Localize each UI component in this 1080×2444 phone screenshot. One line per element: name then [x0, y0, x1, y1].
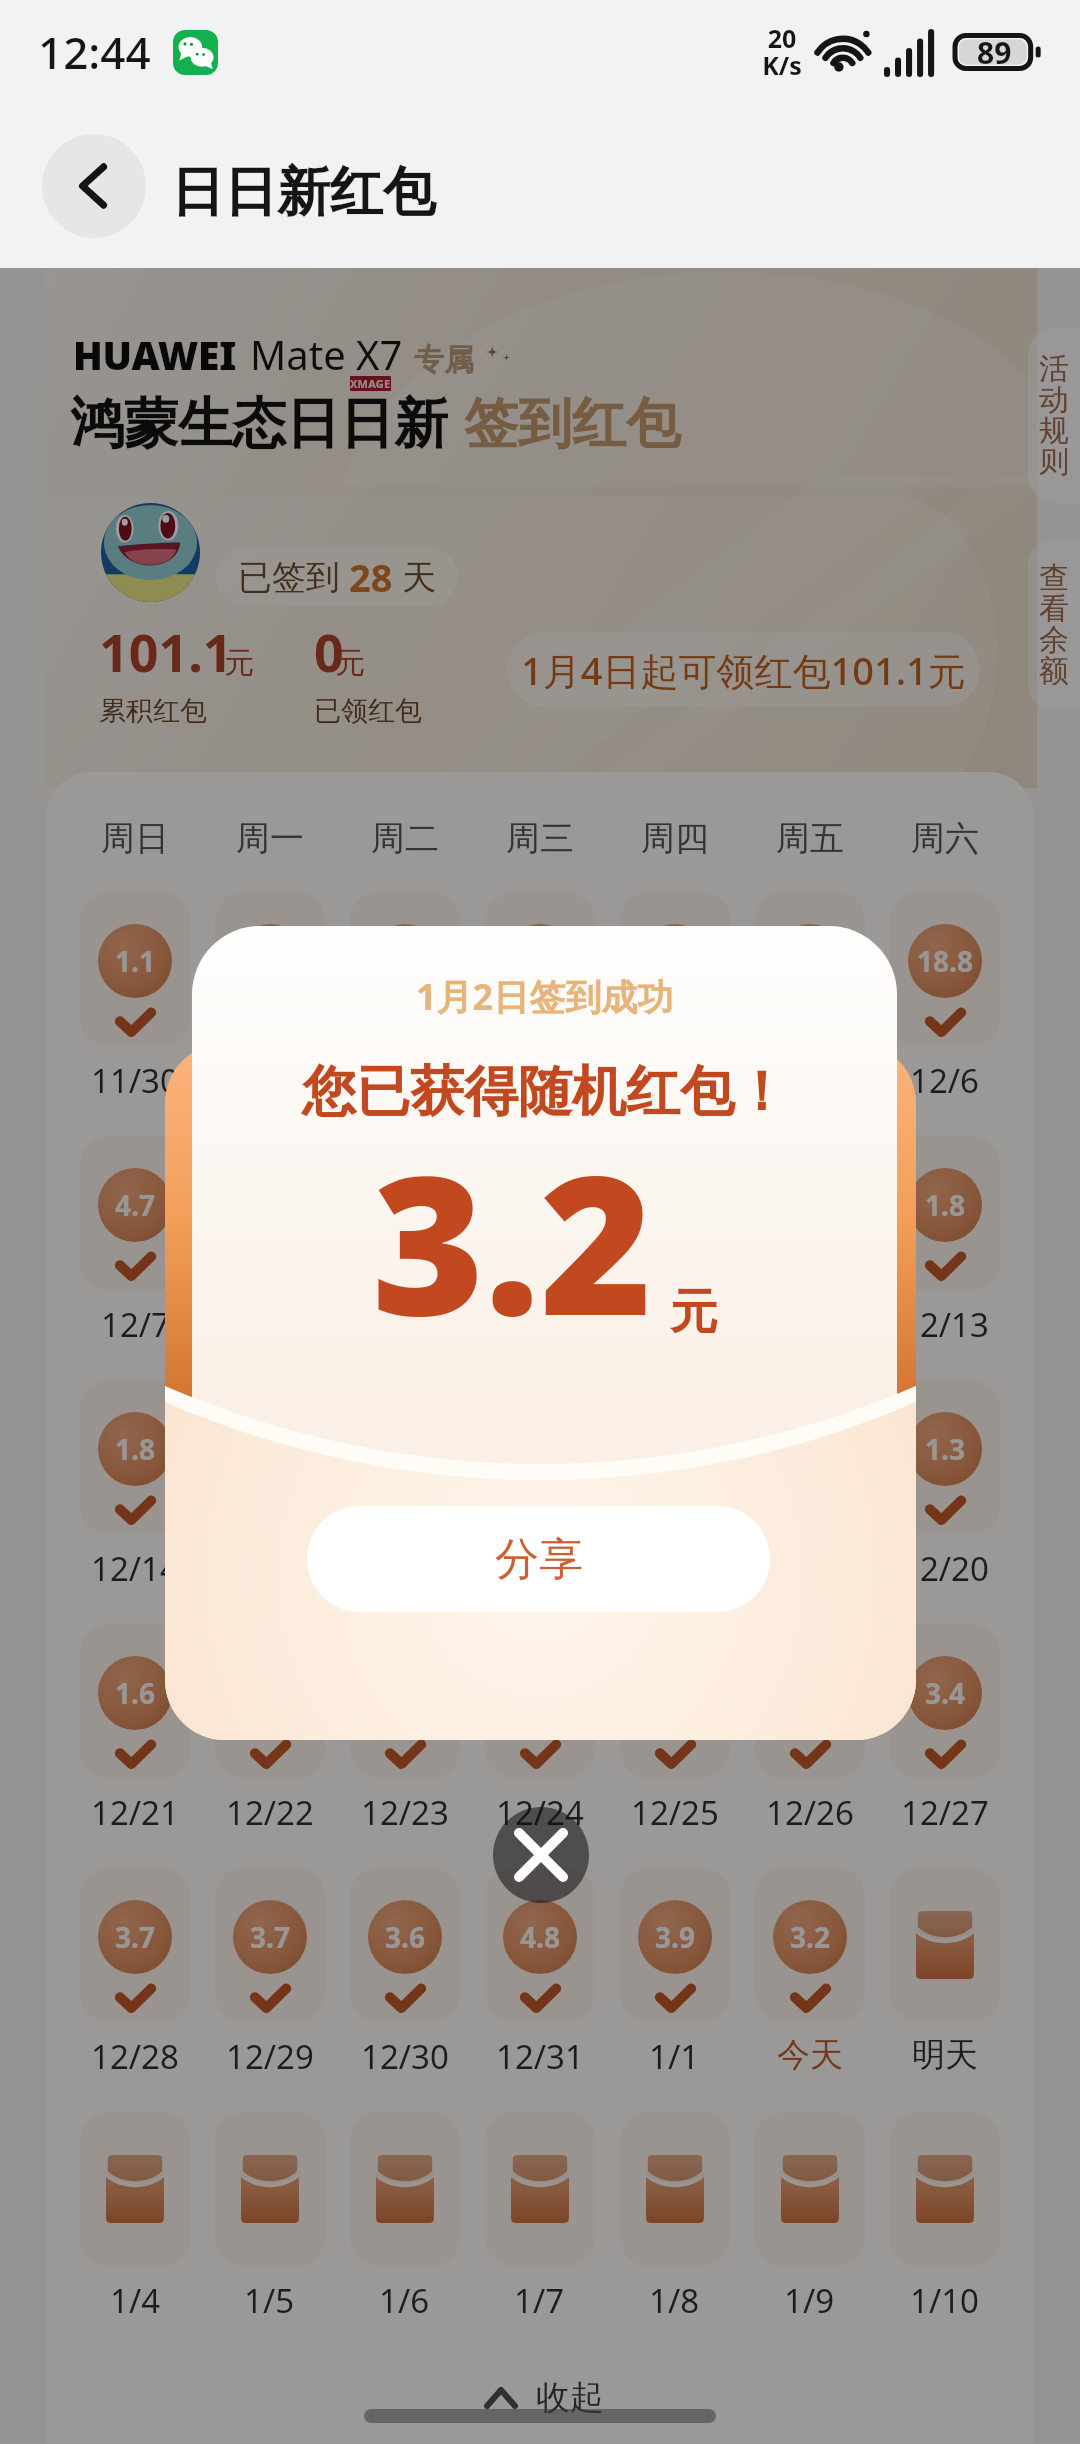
staticText: 今天 — [777, 2034, 843, 2076]
staticText: 您已获得随机红包！ — [302, 1058, 788, 1126]
staticText: 元 — [670, 1282, 718, 1342]
staticText: 12/4 — [640, 1058, 709, 1103]
staticText: 周四 — [641, 817, 709, 860]
button[interactable]: 4.7 — [68, 1136, 202, 1347]
staticText: XMAGE — [350, 376, 391, 391]
staticText: 周五 — [776, 817, 844, 860]
staticText: 101.1 — [99, 616, 233, 687]
button[interactable]: 3.2 — [742, 1868, 877, 2076]
staticText: 累积红包 — [99, 694, 207, 728]
staticText: 1月4日起可领红包101.1元 — [521, 644, 966, 696]
staticText: 12/19 — [766, 1546, 854, 1591]
button[interactable]: 1.8 — [877, 1136, 1012, 1347]
staticText: 1月2日签到成功 — [416, 972, 674, 1021]
button[interactable]: 4.8 — [472, 1868, 607, 2079]
button[interactable]: 1/10 — [877, 2112, 1012, 2323]
button[interactable]: 3.7 — [202, 1868, 337, 2079]
button[interactable]: 1.3 — [742, 1624, 877, 1835]
staticText: 1.4 — [385, 1186, 425, 1224]
button[interactable]: 活动规则 — [1028, 328, 1080, 503]
button[interactable]: 1/6 — [337, 2112, 472, 2323]
button[interactable]: 1.5 — [607, 1624, 742, 1835]
staticText: 12/30 — [361, 2034, 449, 2079]
button[interactable]: 1.9 — [337, 1624, 472, 1835]
staticText: 1/1 — [649, 2034, 700, 2079]
button[interactable]: 2.3 — [472, 1136, 607, 1347]
button[interactable]: 1.7 — [742, 1380, 877, 1591]
staticText: 活动规则 — [1038, 350, 1070, 481]
staticText: 89 — [977, 32, 1012, 73]
button[interactable]: 1.5 — [337, 1380, 472, 1591]
button[interactable]: Back — [42, 134, 146, 238]
staticText: 1/7 — [514, 2278, 565, 2323]
staticText: 0 — [314, 616, 344, 687]
button[interactable]: 收起 — [51, 2376, 1034, 2419]
button[interactable]: 3.0 — [607, 892, 742, 1103]
button[interactable]: 1月4日起可领红包101.1元 — [507, 632, 980, 707]
staticText: 1.1 — [115, 942, 155, 980]
staticText: 12/3 — [505, 1058, 574, 1103]
button[interactable]: 3.7 — [68, 1868, 202, 2079]
button[interactable]: 明天 — [877, 1868, 1012, 2076]
button[interactable]: Close — [493, 1807, 589, 1903]
button[interactable]: 查看余额 — [1028, 539, 1080, 710]
staticText: 12/21 — [91, 1790, 179, 1835]
button[interactable]: 3.4 — [877, 1624, 1012, 1835]
button[interactable]: 1.8 — [68, 1380, 202, 1591]
staticText: 周二 — [371, 817, 439, 860]
button[interactable]: 1.4 — [202, 1624, 337, 1835]
button[interactable]: 2.1 — [337, 892, 472, 1103]
staticText: 周三 — [506, 817, 574, 860]
button[interactable]: 1.2 — [607, 1380, 742, 1591]
staticText: 12/26 — [766, 1790, 854, 1835]
staticText: 3.4 — [925, 1674, 965, 1712]
button[interactable]: 1/7 — [472, 2112, 607, 2323]
button[interactable]: 1.3 — [877, 1380, 1012, 1591]
button[interactable]: 3.9 — [607, 1868, 742, 2079]
staticText: 周一 — [236, 817, 304, 860]
button[interactable]: 18.8 — [877, 892, 1012, 1103]
button[interactable]: 2.2 — [472, 1624, 607, 1835]
staticText: 12/9 — [370, 1302, 439, 1347]
button[interactable]: 1.9 — [742, 892, 877, 1103]
button[interactable]: 3.6 — [337, 1868, 472, 2079]
staticText: 18.8 — [917, 942, 973, 980]
staticText: 12/15 — [226, 1546, 314, 1591]
staticText: 12/7 — [101, 1302, 170, 1347]
button[interactable]: 1.5 — [202, 892, 337, 1103]
button[interactable]: 1.3 — [202, 1380, 337, 1591]
staticText: 周六 — [911, 817, 979, 860]
button[interactable]: 1.6 — [68, 1624, 202, 1835]
button[interactable]: 2.0 — [472, 1380, 607, 1591]
button[interactable]: 1/5 — [202, 2112, 337, 2323]
staticText: 日日新红包 — [171, 159, 436, 226]
button[interactable]: 1.1 — [607, 1136, 742, 1347]
staticText: 3.7 — [115, 1918, 155, 1956]
button[interactable]: 1.4 — [337, 1136, 472, 1347]
button[interactable]: 1/9 — [742, 2112, 877, 2323]
staticText: 1/4 — [110, 2278, 161, 2323]
button[interactable]: 已签到 — [216, 547, 458, 606]
button[interactable]: 1/8 — [607, 2112, 742, 2323]
staticText: 1.3 — [250, 1430, 290, 1468]
staticText: 12/22 — [226, 1790, 314, 1835]
staticText: 20 K/s — [762, 21, 802, 83]
button[interactable]: 分享 — [307, 1506, 770, 1612]
staticText: 1.6 — [115, 1674, 155, 1712]
button[interactable]: 1.1 — [68, 892, 202, 1103]
button[interactable]: 1/4 — [68, 2112, 202, 2323]
button[interactable]: 1.2 — [472, 892, 607, 1103]
staticText: 专属 — [414, 341, 474, 379]
